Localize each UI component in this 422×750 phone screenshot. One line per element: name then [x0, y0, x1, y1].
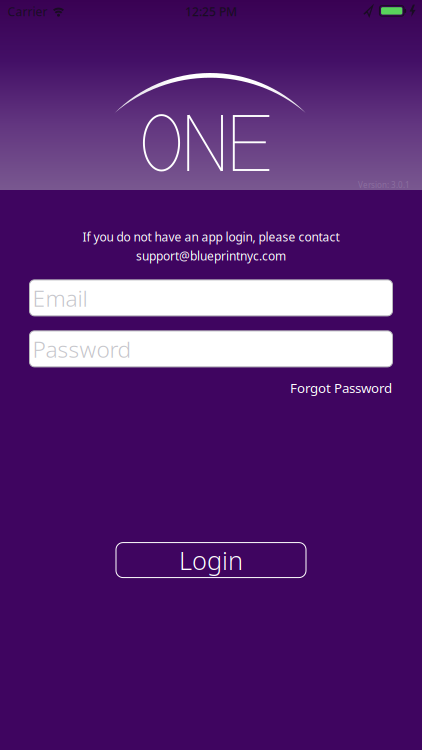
- button[interactable]: Password: [29, 331, 392, 367]
- button[interactable]: Email: [29, 280, 392, 316]
- button[interactable]: Forgot Password: [290, 379, 392, 397]
- staticText: If you do not have an app login, please …: [82, 229, 339, 245]
- staticText: Email: [32, 283, 87, 313]
- staticText: Password: [32, 334, 131, 364]
- staticText: Version: 3.0.1: [358, 180, 410, 190]
- staticText: support@blueprintnyc.com: [136, 248, 286, 264]
- staticText: Forgot Password: [290, 379, 392, 397]
- staticText: Carrier: [7, 3, 47, 19]
- button[interactable]: Login: [116, 543, 306, 578]
- staticText: Login: [179, 543, 243, 577]
- staticText: 12:25 PM: [185, 3, 237, 19]
